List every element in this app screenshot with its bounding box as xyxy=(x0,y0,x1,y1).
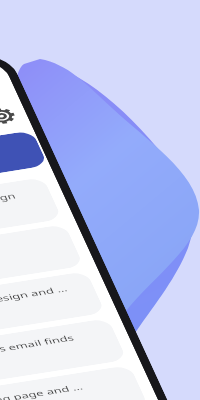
staticText: Proposal to propose the creation of a de… xyxy=(0,188,39,253)
staticText: Dear FramesX Team, I hope this email fin… xyxy=(0,329,104,394)
button[interactable]: Proposal for the new landing page and … xyxy=(0,365,149,400)
staticText: Proposal Proposal for website redesign a… xyxy=(0,283,69,336)
staticText: Proposal for the new landing page and … xyxy=(0,381,85,400)
button[interactable]: Proposal Proposal for website redesign a… xyxy=(0,271,106,362)
staticText: Hi, I am pleased to present to you this … xyxy=(0,235,61,300)
button[interactable]: Hi, I am pleased to present to you this … xyxy=(0,224,84,315)
button[interactable]: Dear FramesX Team, I hope this email fin… xyxy=(0,318,127,400)
button[interactable]: Settings xyxy=(0,104,23,128)
button[interactable]: Proposal to propose the creation of a de… xyxy=(0,177,62,268)
button[interactable] xyxy=(0,130,48,216)
